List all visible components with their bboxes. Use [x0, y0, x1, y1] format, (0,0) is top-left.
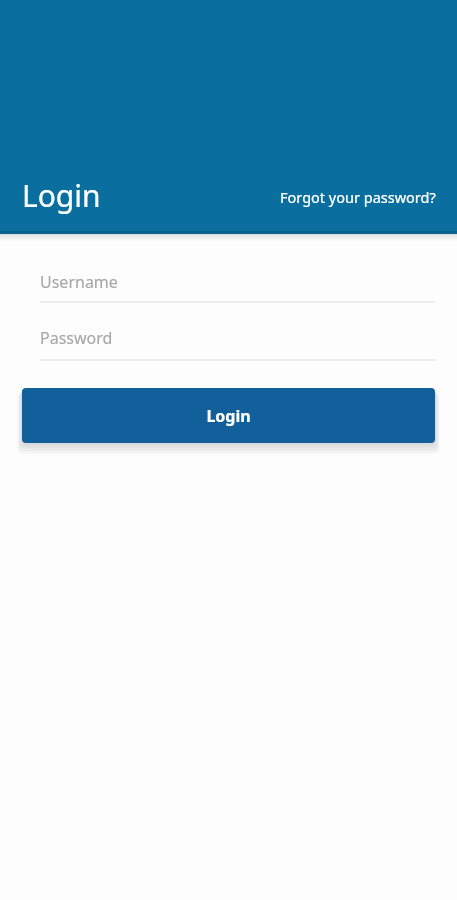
button[interactable]: Password — [22, 311, 435, 367]
staticText: Login — [206, 405, 251, 427]
staticText: Username — [40, 271, 118, 293]
staticText: Password — [40, 327, 113, 349]
staticText: Forgot your password? — [280, 187, 436, 207]
button[interactable]: Login — [22, 388, 435, 443]
button[interactable]: Forgot your password? — [279, 185, 437, 209]
button[interactable]: Username — [22, 255, 435, 309]
staticText: Login — [22, 175, 101, 216]
